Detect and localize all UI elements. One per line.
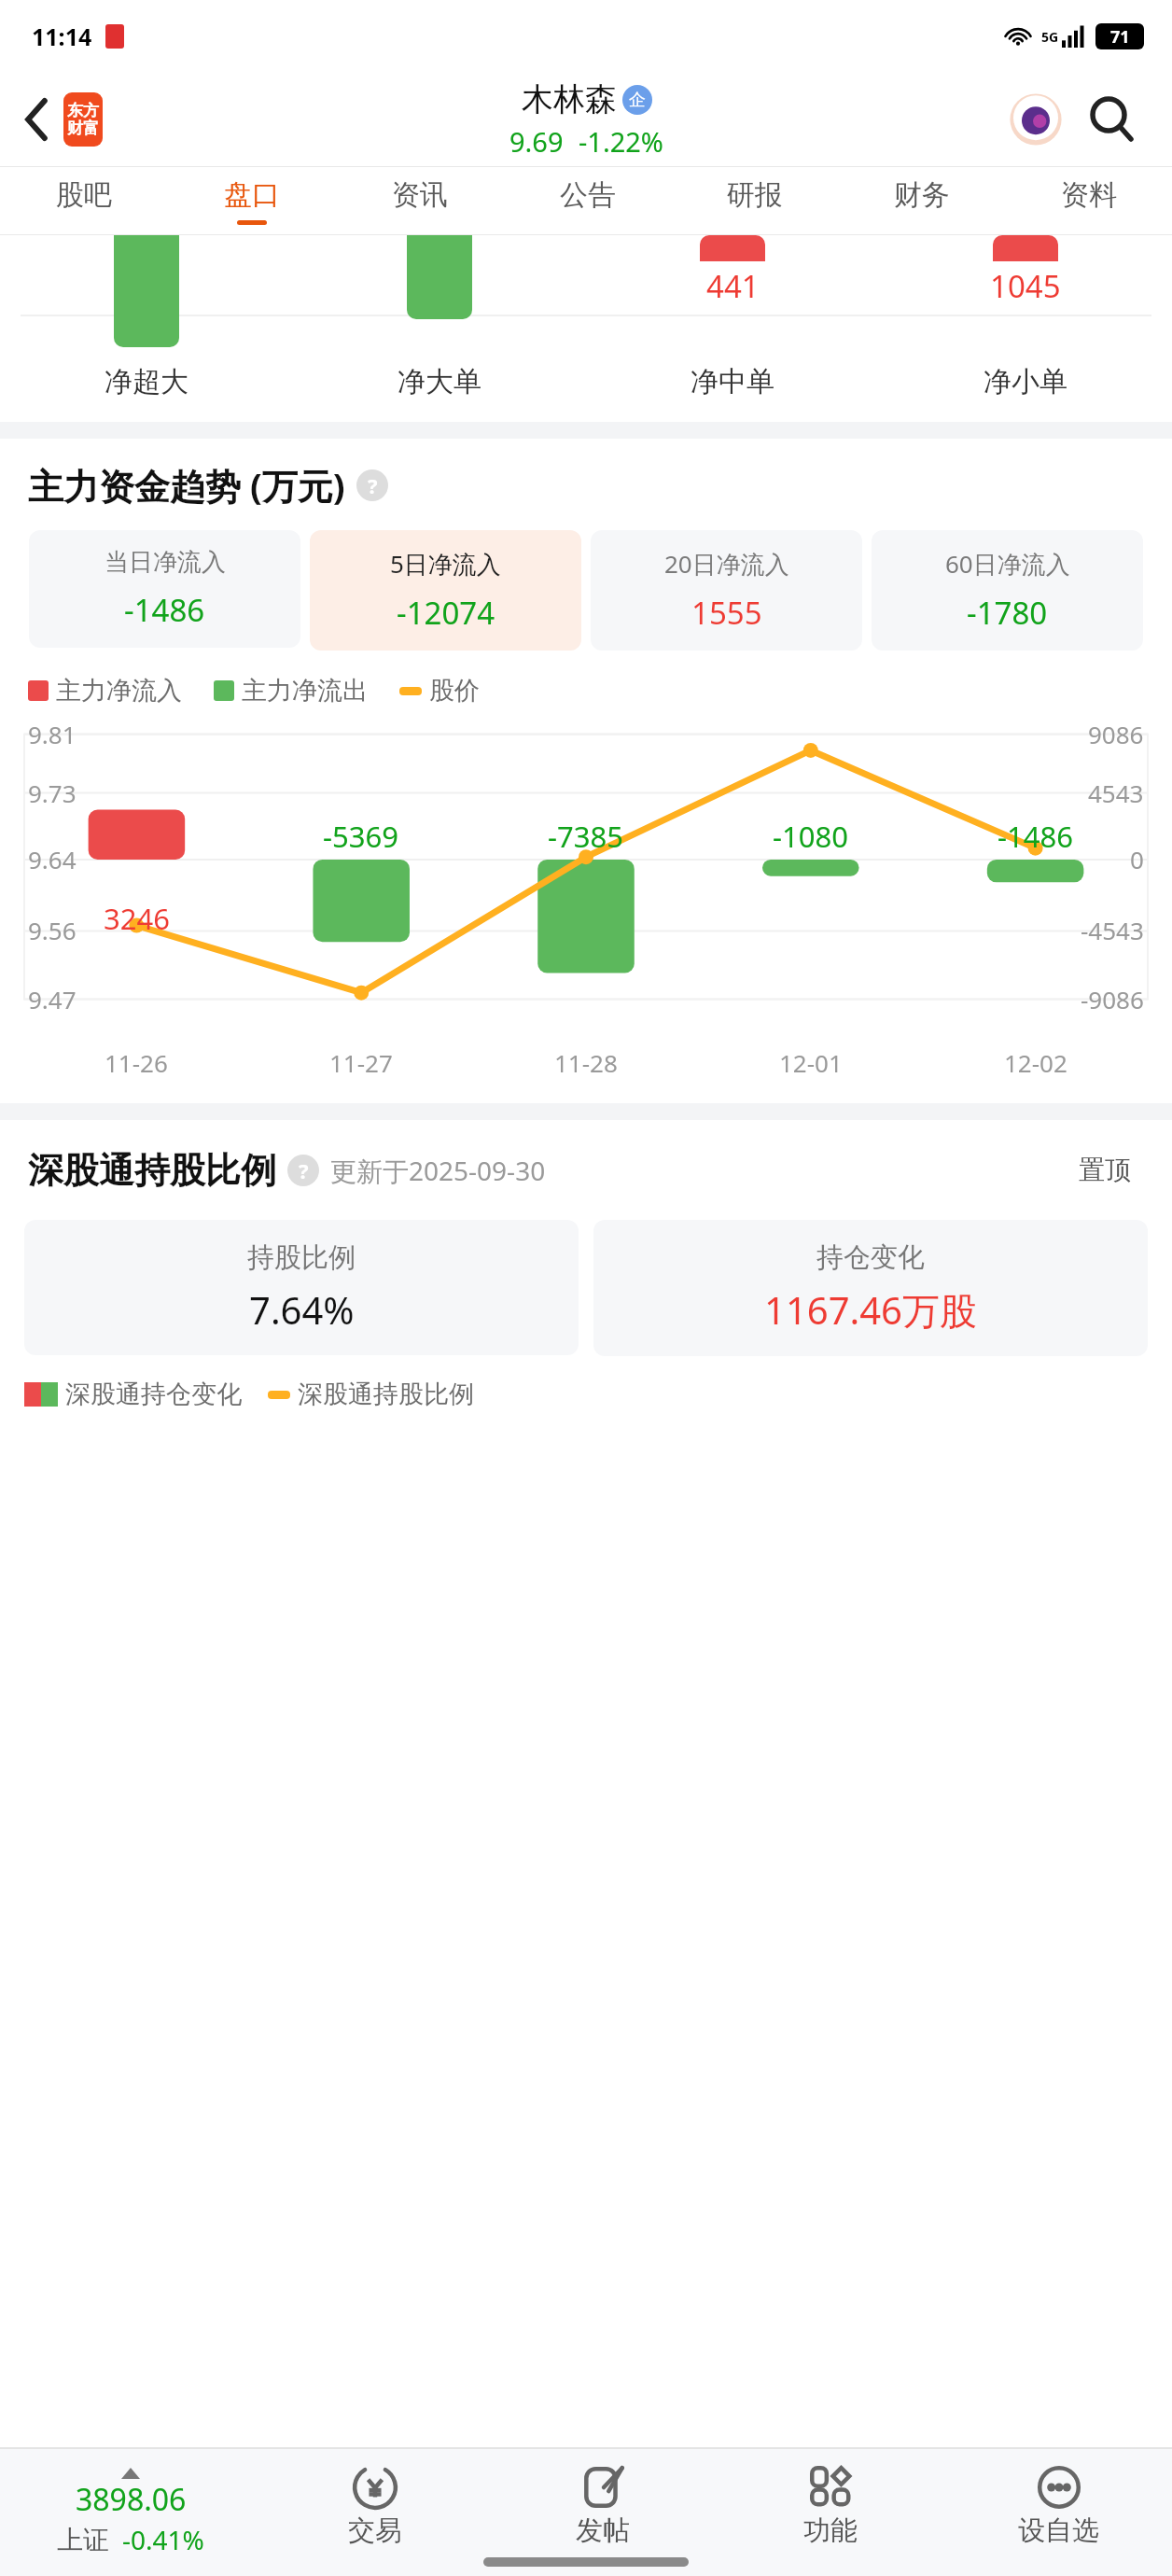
button[interactable]: Help xyxy=(356,469,388,501)
staticText: 主力资金趋势 (万元) xyxy=(28,461,345,510)
button[interactable]: 设自选 xyxy=(944,2449,1172,2576)
button[interactable]: 交易 xyxy=(261,2449,489,2576)
staticText: 研报 xyxy=(727,177,783,213)
staticText: 上证 xyxy=(57,2524,109,2556)
staticText: 12-01 xyxy=(779,1046,843,1079)
staticText: 20日净流入 xyxy=(664,547,789,581)
staticText: 11-28 xyxy=(554,1046,618,1079)
button[interactable]: 20日净流入 xyxy=(591,530,862,651)
staticText: 1555 xyxy=(691,592,762,634)
button[interactable]: 持股比例 xyxy=(24,1220,579,1355)
staticText: 7.64% xyxy=(249,1284,355,1335)
staticText: 1045 xyxy=(990,265,1061,307)
staticText: 0 xyxy=(1130,843,1144,875)
staticText: 木林森 xyxy=(522,79,617,119)
staticText: 11-27 xyxy=(329,1046,393,1079)
staticText: ? xyxy=(299,1156,309,1184)
staticText: 9.47 xyxy=(28,983,77,1015)
button[interactable]: Assistant xyxy=(1000,84,1071,155)
button[interactable]: 资料 xyxy=(1005,167,1172,234)
staticText: 11:14 xyxy=(32,21,92,52)
staticText: 净大单 xyxy=(398,364,481,399)
staticText: 深股通持仓变化 xyxy=(65,1379,242,1410)
staticText: 71 xyxy=(1110,25,1130,49)
staticText: 财务 xyxy=(894,177,950,213)
button[interactable]: 当日净流入 xyxy=(29,530,300,648)
staticText: 主力净流入 xyxy=(56,675,182,707)
staticText: -1080 xyxy=(773,817,848,856)
staticText: 设自选 xyxy=(1018,2513,1099,2548)
staticText: 1167.46万股 xyxy=(764,1284,977,1336)
staticText: 5日净流入 xyxy=(390,547,501,581)
staticText: 交易 xyxy=(348,2513,402,2548)
staticText: 当日净流入 xyxy=(105,547,226,578)
staticText: 企 xyxy=(629,90,646,111)
button[interactable]: 研报 xyxy=(671,167,838,234)
staticText: 9.73 xyxy=(28,777,77,809)
staticText: 股价 xyxy=(429,675,480,707)
button[interactable]: 3898.06 xyxy=(0,2449,261,2576)
staticText: -0.41% xyxy=(122,2522,204,2557)
button[interactable]: 持仓变化 xyxy=(593,1220,1148,1356)
staticText: 股吧 xyxy=(56,177,112,213)
button[interactable]: Back xyxy=(11,93,63,146)
staticText: 资讯 xyxy=(392,177,448,213)
staticText: 441 xyxy=(706,265,760,307)
button[interactable]: 5日净流入 xyxy=(310,530,581,651)
staticText: 更新于2025-09-30 xyxy=(330,1153,546,1188)
staticText: 功能 xyxy=(803,2513,858,2548)
staticText: 盘口 xyxy=(224,177,280,213)
staticText: -5369 xyxy=(323,817,398,856)
button[interactable]: 60日净流入 xyxy=(872,530,1143,651)
staticText: 9.69 xyxy=(509,123,564,160)
staticText: 5G xyxy=(1041,28,1059,46)
staticText: 资料 xyxy=(1061,177,1117,213)
staticText: -4543 xyxy=(1081,914,1144,946)
staticText: 净中单 xyxy=(691,364,774,399)
staticText: 公告 xyxy=(560,177,616,213)
button[interactable]: 功能 xyxy=(717,2449,944,2576)
staticText: ? xyxy=(368,471,378,499)
staticText: 12-02 xyxy=(1004,1046,1067,1079)
staticText: -7385 xyxy=(548,817,623,856)
staticText: -1486 xyxy=(124,589,205,631)
button[interactable]: 资讯 xyxy=(336,167,504,234)
staticText: -1.22% xyxy=(579,123,663,160)
staticText: 9.81 xyxy=(28,718,77,750)
staticText: -1780 xyxy=(967,592,1048,634)
staticText: 深股通持股比例 xyxy=(298,1379,474,1410)
staticText: 深股通持股比例 xyxy=(28,1148,276,1193)
staticText: 主力净流出 xyxy=(242,675,368,707)
staticText: 发帖 xyxy=(576,2513,630,2548)
button[interactable]: 财务 xyxy=(838,167,1005,234)
button[interactable]: Search xyxy=(1079,86,1146,153)
button[interactable]: 发帖 xyxy=(489,2449,717,2576)
staticText: 60日净流入 xyxy=(945,547,1070,581)
staticText: 3898.06 xyxy=(76,2479,187,2520)
staticText: -12074 xyxy=(397,592,495,634)
button[interactable]: 置顶 xyxy=(1062,1144,1148,1196)
staticText: 9.56 xyxy=(28,914,77,946)
staticText: 净小单 xyxy=(984,364,1067,399)
button[interactable]: 公告 xyxy=(504,167,671,234)
staticText: 9086 xyxy=(1088,718,1144,750)
staticText: 9.64 xyxy=(28,843,77,875)
staticText: 持仓变化 xyxy=(816,1240,925,1275)
staticText: 净超大 xyxy=(105,364,188,399)
button[interactable]: 盘口 xyxy=(168,167,336,234)
staticText: 4543 xyxy=(1088,777,1144,809)
staticText: 持股比例 xyxy=(247,1240,356,1275)
button[interactable]: East Money xyxy=(63,92,103,147)
staticText: 11-26 xyxy=(105,1046,168,1079)
staticText: -1486 xyxy=(998,817,1073,856)
staticText: 3246 xyxy=(104,899,170,938)
staticText: 置顶 xyxy=(1079,1154,1131,1186)
button[interactable]: Help xyxy=(287,1155,319,1186)
button[interactable]: 股吧 xyxy=(0,167,168,234)
staticText: -9086 xyxy=(1081,983,1144,1015)
staticText: 东方 财富 xyxy=(67,101,99,138)
